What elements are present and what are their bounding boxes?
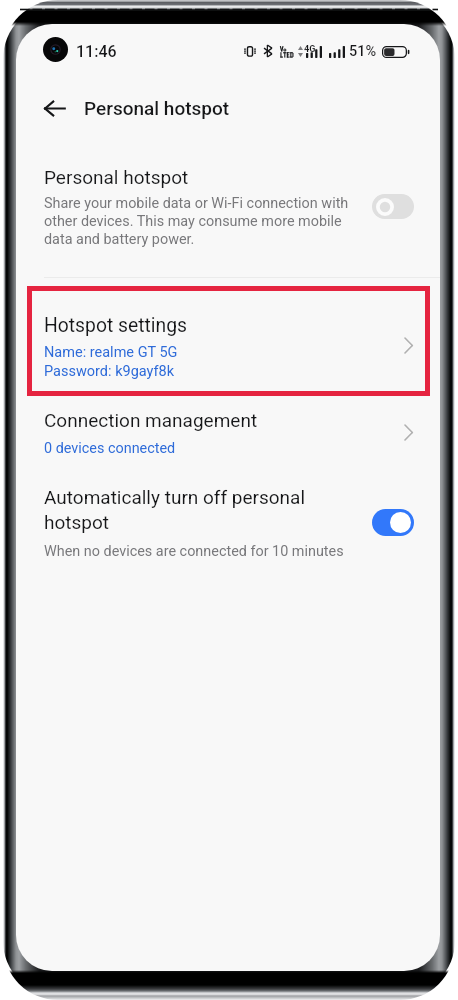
button[interactable]: Back [30, 84, 78, 132]
button[interactable]: Personal hotspot toggle, off [372, 194, 414, 219]
staticText: Personal hotspot [84, 97, 230, 119]
staticText: When no devices are connected for 10 min… [44, 543, 344, 560]
other: Open [403, 337, 414, 354]
staticText: 4G [304, 44, 316, 55]
button[interactable]: Automatically turn off toggle, on [372, 509, 414, 536]
staticText: Hotspot settings [44, 314, 187, 337]
staticText: 11:46 [76, 42, 117, 61]
staticText: Password: k9gayf8k [44, 363, 175, 380]
button[interactable]: Hotspot settings [27, 286, 430, 396]
staticText: 0 devices connected [44, 440, 176, 457]
staticText: Name: realme GT 5G [44, 344, 178, 361]
staticText: Connection management [44, 409, 258, 431]
staticText: Personal hotspot [44, 166, 189, 188]
staticText: Share your mobile data or Wi-Fi connecti… [44, 195, 356, 248]
staticText: 51% [349, 43, 377, 60]
button[interactable]: Connection management [16, 406, 440, 468]
staticText: Automatically turn off personal hotspot [44, 486, 334, 534]
other: Open [403, 424, 414, 441]
